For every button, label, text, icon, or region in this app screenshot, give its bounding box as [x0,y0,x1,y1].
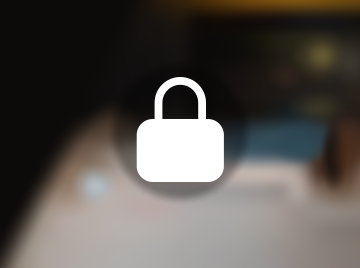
button[interactable]: Locked [105,57,255,207]
